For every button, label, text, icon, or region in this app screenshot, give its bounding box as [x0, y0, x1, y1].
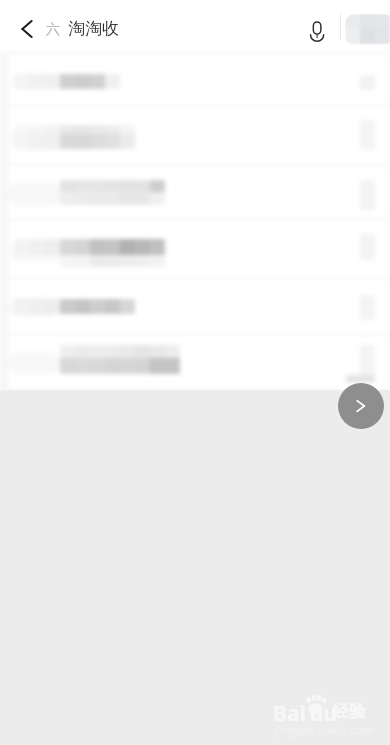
- staticText: 经验: [332, 701, 366, 722]
- button[interactable]: Back: [12, 14, 42, 44]
- staticText: Bai: [273, 699, 306, 728]
- button[interactable]: Next page: [338, 383, 384, 429]
- staticText: 淘淘收: [68, 18, 119, 39]
- staticText: du: [310, 699, 337, 728]
- button[interactable]: Account: [345, 14, 390, 45]
- staticText: 六: [46, 21, 60, 39]
- button[interactable]: Voice search: [303, 14, 331, 42]
